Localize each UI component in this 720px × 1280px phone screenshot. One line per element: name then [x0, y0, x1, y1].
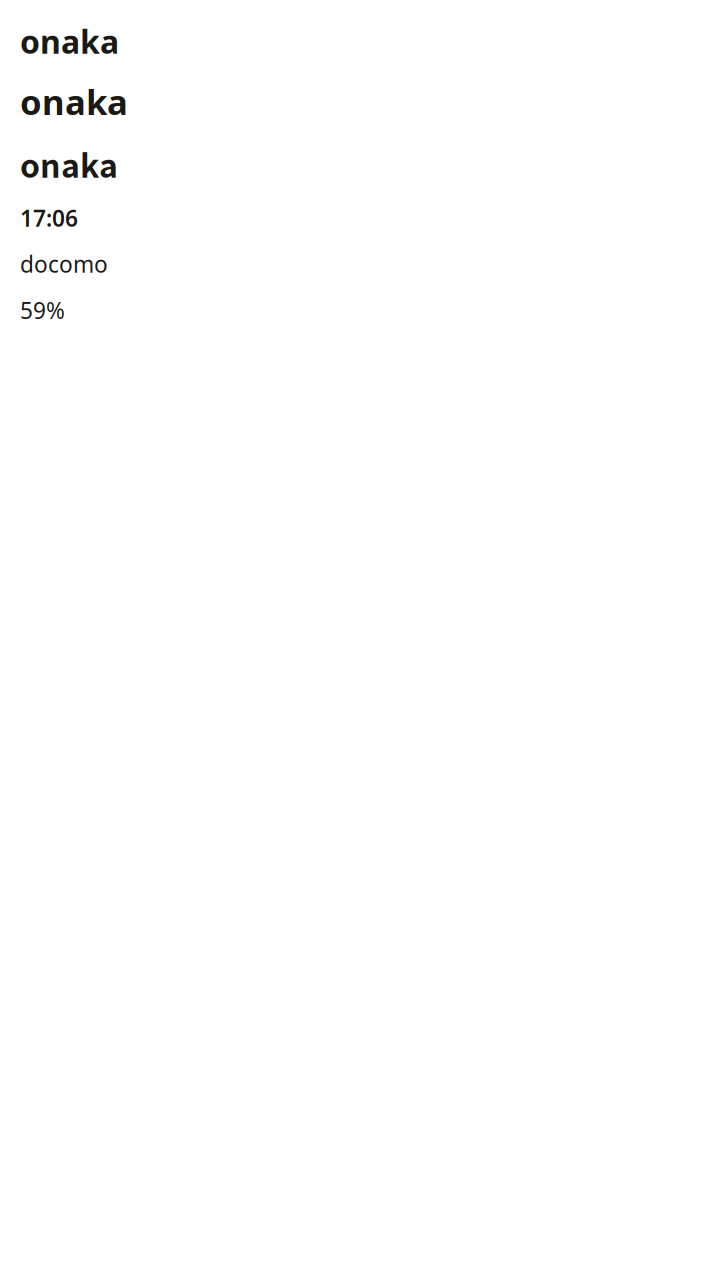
staticText: docomo	[20, 249, 108, 279]
staticText: 17:06	[20, 203, 78, 233]
staticText: onaka	[20, 140, 118, 187]
staticText: onaka	[20, 78, 128, 124]
staticText: onaka	[20, 20, 119, 62]
staticText: 59%	[20, 295, 65, 325]
